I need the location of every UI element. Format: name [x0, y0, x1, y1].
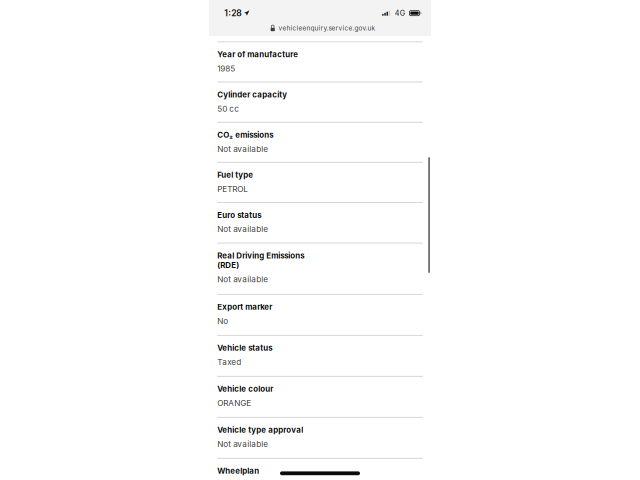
button[interactable]: Export marker [209, 295, 431, 335]
staticText: Fuel type [217, 170, 253, 180]
staticText: Vehicle colour [217, 384, 273, 394]
staticText: Not available [217, 439, 268, 449]
staticText: Cylinder capacity [217, 90, 287, 99]
staticText: Real Driving Emissions (RDE) [217, 251, 304, 270]
button[interactable]: Year of manufacture [209, 42, 431, 82]
staticText: CO₂ emissions [217, 130, 273, 140]
staticText: vehicleenquiry.service.gov.uk [278, 24, 375, 32]
button[interactable]: Vehicle colour [209, 377, 431, 417]
button[interactable]: Vehicle status [209, 336, 431, 376]
button[interactable]: Fuel type [209, 163, 431, 202]
staticText: 1985 [217, 64, 235, 73]
staticText: Year of manufacture [217, 50, 298, 59]
staticText: Export marker [217, 302, 272, 312]
staticText: 1:28 [224, 8, 242, 18]
staticText: Not available [217, 224, 268, 234]
button[interactable]: Vehicle type approval [209, 418, 431, 458]
staticText: 4G [395, 9, 405, 17]
button[interactable]: Real Driving Emissions (RDE) [209, 243, 431, 294]
button[interactable]: Euro status [209, 203, 431, 243]
staticText: Taxed [217, 357, 241, 367]
staticText: ORANGE [217, 398, 251, 408]
staticText: Not available [217, 144, 268, 154]
button[interactable]: CO₂ emissions [209, 123, 431, 162]
staticText: No [217, 316, 228, 326]
button[interactable]: Cylinder capacity [209, 82, 431, 122]
staticText: PETROL [217, 184, 248, 194]
button[interactable]: Address — vehicleenquiry.service.gov.uk [209, 21, 431, 36]
staticText: Wheelplan [217, 466, 259, 476]
staticText: Vehicle type approval [217, 425, 303, 435]
staticText: Vehicle status [217, 343, 272, 353]
staticText: Euro status [217, 210, 261, 220]
staticText: Not available [217, 274, 268, 284]
staticText: 50 cc [217, 104, 239, 114]
button[interactable]: Wheelplan [209, 459, 431, 480]
